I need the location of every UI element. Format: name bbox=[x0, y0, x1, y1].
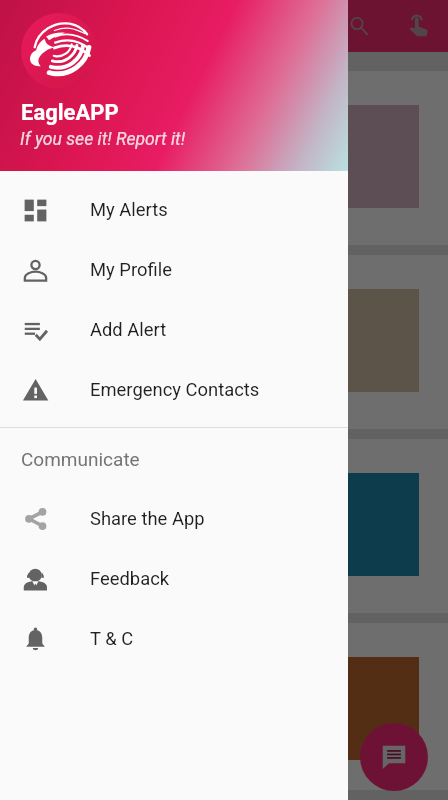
button[interactable]: My Alerts bbox=[0, 180, 348, 240]
staticText: Add Alert bbox=[90, 319, 167, 341]
button[interactable]: My Profile bbox=[0, 240, 348, 300]
staticText: My Alerts bbox=[90, 199, 168, 221]
button[interactable]: Messages bbox=[360, 723, 428, 791]
staticText: EagleAPP bbox=[21, 100, 119, 126]
staticText: T & C bbox=[90, 628, 134, 650]
button[interactable]: Search bbox=[335, 2, 383, 50]
button[interactable]: Share the App bbox=[0, 489, 348, 549]
staticText: Emergency Contacts bbox=[90, 379, 260, 401]
staticText: Share the App bbox=[90, 508, 205, 530]
button[interactable]: Feedback bbox=[0, 549, 348, 609]
button[interactable]: Emergency Contacts bbox=[0, 360, 348, 420]
button[interactable]: Touch to report bbox=[395, 2, 443, 50]
button[interactable]: Add Alert bbox=[0, 300, 348, 360]
staticText: Feedback bbox=[90, 568, 170, 590]
staticText: Communicate bbox=[21, 448, 140, 470]
staticText: If you see it! Report it! bbox=[20, 129, 186, 150]
staticText: My Profile bbox=[90, 259, 172, 281]
button[interactable]: T & C bbox=[0, 609, 348, 669]
